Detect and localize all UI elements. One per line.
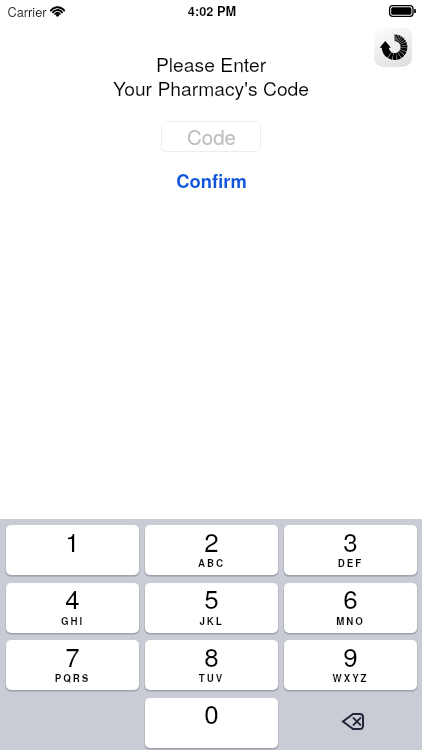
staticText: 7 xyxy=(6,637,139,674)
staticText: TUV xyxy=(145,671,278,685)
button[interactable] xyxy=(6,640,139,690)
button[interactable] xyxy=(284,525,417,575)
button[interactable] xyxy=(6,583,139,633)
staticText: PQRS xyxy=(6,671,139,685)
staticText: 0 xyxy=(145,694,278,731)
staticText: 6 xyxy=(284,579,417,616)
staticText: 5 xyxy=(145,579,278,616)
button[interactable]: Delete xyxy=(284,698,417,748)
staticText: Confirm xyxy=(176,167,247,193)
staticText: Please Enter xyxy=(0,50,422,78)
button[interactable]: Confirm xyxy=(168,167,254,193)
button[interactable] xyxy=(145,640,278,690)
staticText: DEF xyxy=(284,556,417,570)
button[interactable]: Code xyxy=(161,121,261,152)
button[interactable]: Refresh xyxy=(374,28,412,66)
staticText: 4 xyxy=(6,579,139,616)
staticText: ABC xyxy=(145,556,278,570)
button[interactable] xyxy=(145,583,278,633)
staticText: Your Pharmacy's Code xyxy=(0,74,422,102)
staticText: Carrier xyxy=(7,2,47,20)
staticText: MNO xyxy=(284,614,417,628)
button[interactable] xyxy=(145,698,278,748)
staticText: 2 xyxy=(145,522,278,559)
button[interactable] xyxy=(145,525,278,575)
button[interactable] xyxy=(6,525,139,575)
staticText: Code xyxy=(187,121,236,150)
staticText: GHI xyxy=(6,614,139,628)
staticText: 3 xyxy=(284,522,417,559)
staticText: 4:02 PM xyxy=(1,2,422,20)
staticText: 9 xyxy=(284,637,417,674)
staticText: JKL xyxy=(145,614,278,628)
button[interactable] xyxy=(284,640,417,690)
button[interactable] xyxy=(284,583,417,633)
staticText: 1 xyxy=(6,522,139,559)
staticText: WXYZ xyxy=(284,671,417,685)
staticText: 8 xyxy=(145,637,278,674)
